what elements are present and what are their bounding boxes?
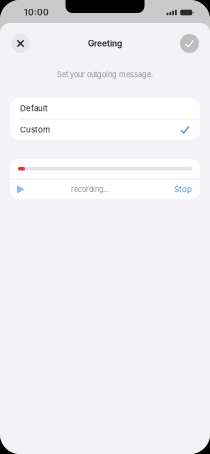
staticText: Default — [20, 103, 48, 113]
staticText: Set your outgoing message. — [57, 70, 153, 79]
button[interactable]: Close — [11, 34, 30, 53]
staticText: recording... — [71, 185, 109, 194]
staticText: Stop — [174, 184, 192, 194]
button[interactable]: Stop — [174, 184, 192, 194]
staticText: Custom — [20, 125, 50, 134]
button[interactable]: Custom — [10, 119, 200, 140]
staticText: Greeting — [88, 38, 122, 49]
staticText: 10:00 — [24, 7, 49, 18]
button[interactable]: Play — [17, 183, 28, 196]
button[interactable]: Done — [180, 34, 199, 53]
button[interactable]: Default — [10, 98, 200, 118]
